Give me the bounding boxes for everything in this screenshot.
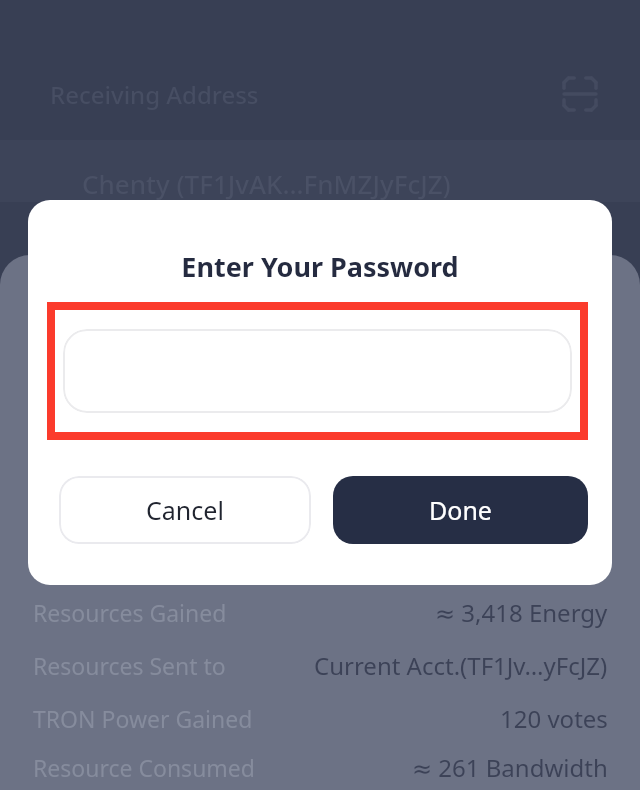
- staticText: Resource Consumed: [33, 752, 255, 783]
- staticText: Chenty (TF1JvAK…FnMZJyFcJZ): [82, 166, 451, 201]
- button[interactable]: Resource Consumed: [0, 745, 640, 790]
- staticText: Receiving Address: [50, 78, 259, 111]
- staticText: Resources Gained: [33, 597, 227, 628]
- staticText: Current Acct.(TF1Jv…yFcJZ): [314, 649, 608, 682]
- staticText: Enter Your Password: [28, 248, 612, 285]
- button[interactable]: Resources Sent to: [0, 639, 640, 692]
- button[interactable]: Scan QR code: [560, 74, 600, 114]
- staticText: Cancel: [146, 493, 224, 527]
- staticText: ≈ 3,418 Energy: [435, 596, 608, 629]
- button[interactable]: Password field: [63, 329, 572, 413]
- staticText: ≈ 261 Bandwidth: [412, 751, 608, 784]
- staticText: TRON Power Gained: [33, 703, 253, 734]
- button[interactable]: Resources Gained: [0, 586, 640, 639]
- button[interactable]: Done: [333, 476, 588, 544]
- staticText: Done: [429, 493, 492, 527]
- staticText: Resources Sent to: [33, 650, 226, 681]
- staticText: 120 votes: [500, 702, 608, 735]
- button[interactable]: TRON Power Gained: [0, 692, 640, 745]
- button[interactable]: Cancel: [59, 476, 311, 544]
